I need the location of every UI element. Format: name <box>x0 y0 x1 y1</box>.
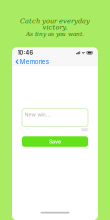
button[interactable]: Memories <box>12 58 52 65</box>
staticText: As tiny as you want. <box>26 31 84 37</box>
button[interactable]: Save <box>22 136 88 147</box>
staticText: New win... <box>25 111 52 118</box>
staticText: Memories <box>20 58 49 65</box>
staticText: 0/80 <box>81 128 88 132</box>
staticText: Save <box>49 138 61 145</box>
staticText: 10:46 <box>17 49 33 56</box>
staticText: Catch your everyday <box>20 17 90 25</box>
staticText: victory. <box>42 23 67 31</box>
